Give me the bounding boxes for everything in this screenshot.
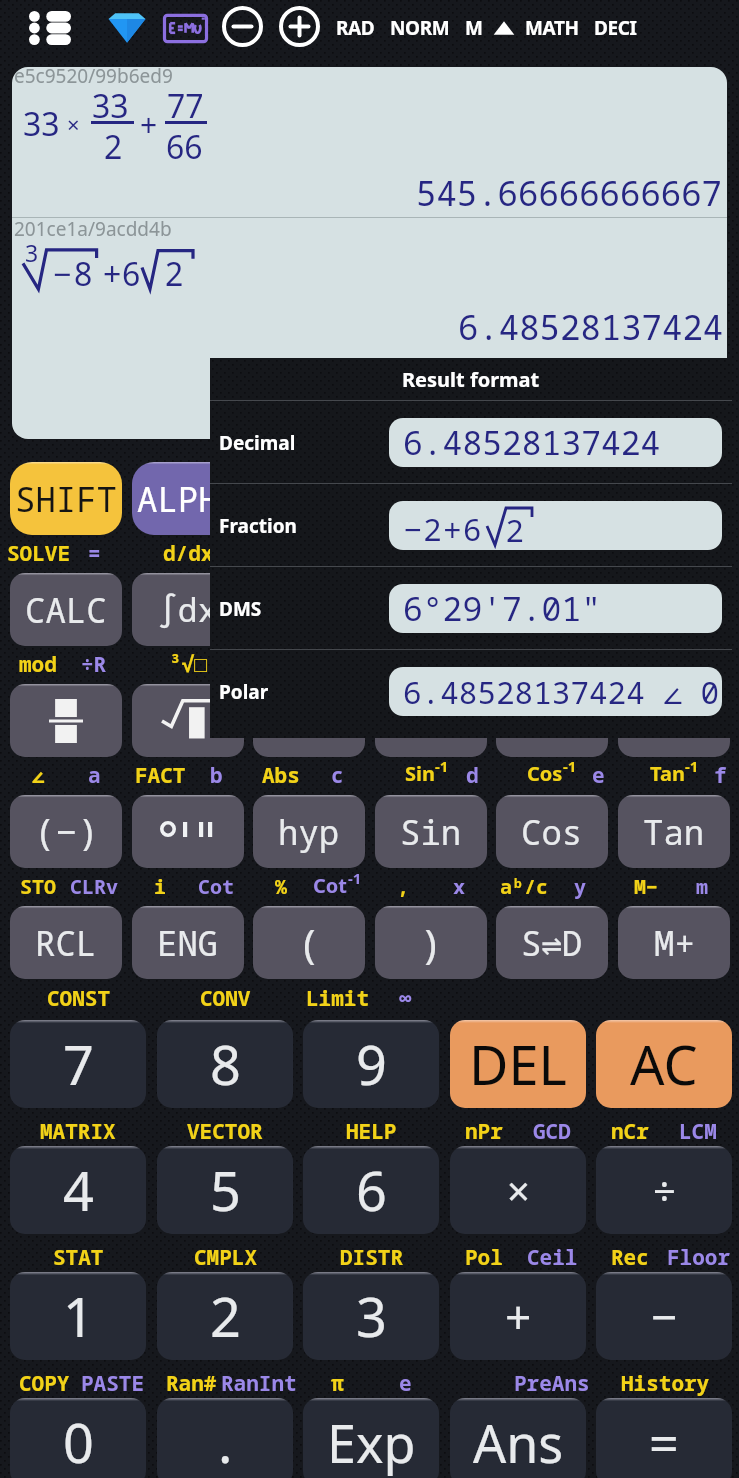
button[interactable]: Zoom in xyxy=(275,2,324,51)
button[interactable]: 1 xyxy=(10,1272,146,1360)
button[interactable]: eˣ xyxy=(496,684,608,757)
staticText: ALPHA xyxy=(137,476,239,522)
button[interactable]: DEL xyxy=(450,1020,586,1108)
button[interactable]: Formulas xyxy=(161,4,209,52)
button[interactable]: log xyxy=(375,573,487,646)
button[interactable]: Polar xyxy=(210,650,732,733)
staticText: STAT xyxy=(53,1243,104,1272)
button[interactable]: key xyxy=(132,795,244,868)
staticText: x xyxy=(453,873,465,900)
staticText: ON xyxy=(658,481,690,516)
button[interactable]: 8 xyxy=(157,1020,293,1108)
button[interactable]: ALPHA xyxy=(132,462,244,535)
staticText: CLRv xyxy=(70,873,118,900)
staticText: m xyxy=(696,873,708,900)
staticText: Ans xyxy=(473,1407,564,1478)
button[interactable]: x² xyxy=(618,573,730,646)
button[interactable]: ∫dx xyxy=(132,573,244,646)
staticText: c xyxy=(331,761,344,790)
staticText: 8 xyxy=(210,1027,241,1101)
button[interactable]: (−) xyxy=(10,795,122,868)
staticText: MODE xyxy=(523,482,581,515)
staticText: . xyxy=(218,1405,233,1478)
button[interactable]: Zoom out xyxy=(218,2,267,51)
button[interactable]: Ans xyxy=(450,1398,586,1478)
button[interactable]: − xyxy=(596,1272,732,1360)
staticText: nCr xyxy=(611,1117,649,1146)
button[interactable]: Premium xyxy=(102,4,152,52)
button[interactable]: x□ xyxy=(253,684,365,757)
button[interactable]: key xyxy=(132,684,244,757)
button[interactable]: Sin xyxy=(375,795,487,868)
staticText: DMS xyxy=(219,596,262,622)
staticText: − xyxy=(53,252,72,296)
button[interactable]: M+ xyxy=(618,906,730,979)
button[interactable]: 6 xyxy=(303,1146,439,1234)
button[interactable]: CALC xyxy=(10,573,122,646)
staticText: -1 xyxy=(348,868,362,888)
button[interactable]: + xyxy=(450,1272,586,1360)
button[interactable]: Exp xyxy=(303,1398,439,1478)
staticText: STO xyxy=(20,873,56,900)
staticText: % xyxy=(275,873,287,900)
staticText: NORM xyxy=(390,15,450,41)
staticText: 0 xyxy=(63,1405,94,1478)
button[interactable]: key xyxy=(618,684,730,757)
button[interactable]: 5 xyxy=(157,1146,293,1234)
button[interactable]: key xyxy=(375,462,487,535)
button[interactable]: 9 xyxy=(303,1020,439,1108)
button[interactable]: RCL xyxy=(10,906,122,979)
button[interactable]: 10ˣ xyxy=(375,684,487,757)
button[interactable]: DMS xyxy=(210,567,732,650)
button[interactable]: ) xyxy=(375,906,487,979)
button[interactable]: Cos xyxy=(496,795,608,868)
button[interactable]: . xyxy=(157,1398,293,1478)
staticText: M− xyxy=(634,873,658,900)
staticText: Cot xyxy=(198,873,234,900)
button[interactable]: Fraction xyxy=(210,484,732,567)
staticText: + xyxy=(140,104,158,145)
button[interactable]: Menu xyxy=(20,4,80,52)
button[interactable]: Tan xyxy=(618,795,730,868)
button[interactable]: S⇌D xyxy=(496,906,608,979)
button[interactable]: ENG xyxy=(132,906,244,979)
button[interactable]: 0 xyxy=(10,1398,146,1478)
staticText: Polar xyxy=(219,679,269,705)
staticText: VECTOR xyxy=(187,1117,263,1146)
button[interactable]: hyp xyxy=(253,795,365,868)
staticText: ln xyxy=(532,587,573,633)
button[interactable]: 3 xyxy=(303,1272,439,1360)
button[interactable]: 4 xyxy=(10,1146,146,1234)
staticText: ENG xyxy=(157,920,219,966)
button[interactable]: ln xyxy=(496,573,608,646)
button[interactable]: 7 xyxy=(10,1020,146,1108)
staticText: Tan xyxy=(643,809,705,855)
staticText: ÷ xyxy=(653,1163,676,1217)
staticText: MATRIX xyxy=(40,1117,116,1146)
button[interactable]: ( xyxy=(253,906,365,979)
staticText: RCL xyxy=(35,920,97,966)
button[interactable]: ÷ xyxy=(596,1146,732,1234)
staticText: 2 xyxy=(506,509,524,550)
button[interactable]: × xyxy=(450,1146,586,1234)
staticText: nPr xyxy=(465,1117,503,1146)
staticText: d/dx xyxy=(163,539,214,568)
button[interactable]: AC xyxy=(596,1020,732,1108)
button[interactable]: Decimal xyxy=(210,401,732,484)
staticText: Tan xyxy=(650,760,685,787)
staticText: 33 xyxy=(23,102,60,146)
button[interactable]: = xyxy=(596,1398,732,1478)
button[interactable]: key xyxy=(10,684,122,757)
button[interactable]: key xyxy=(253,462,365,535)
button[interactable]: SHIFT xyxy=(10,462,122,535)
button[interactable]: 2 xyxy=(157,1272,293,1360)
staticText: CALC xyxy=(25,587,107,633)
staticText: 1 xyxy=(63,1279,94,1353)
button[interactable]: MODE xyxy=(496,462,608,535)
button[interactable]: x⁻¹ xyxy=(253,573,365,646)
button[interactable]: ON xyxy=(618,462,730,535)
staticText: + xyxy=(103,252,122,296)
staticText: x□ xyxy=(290,699,329,743)
staticText: π xyxy=(331,1369,344,1398)
